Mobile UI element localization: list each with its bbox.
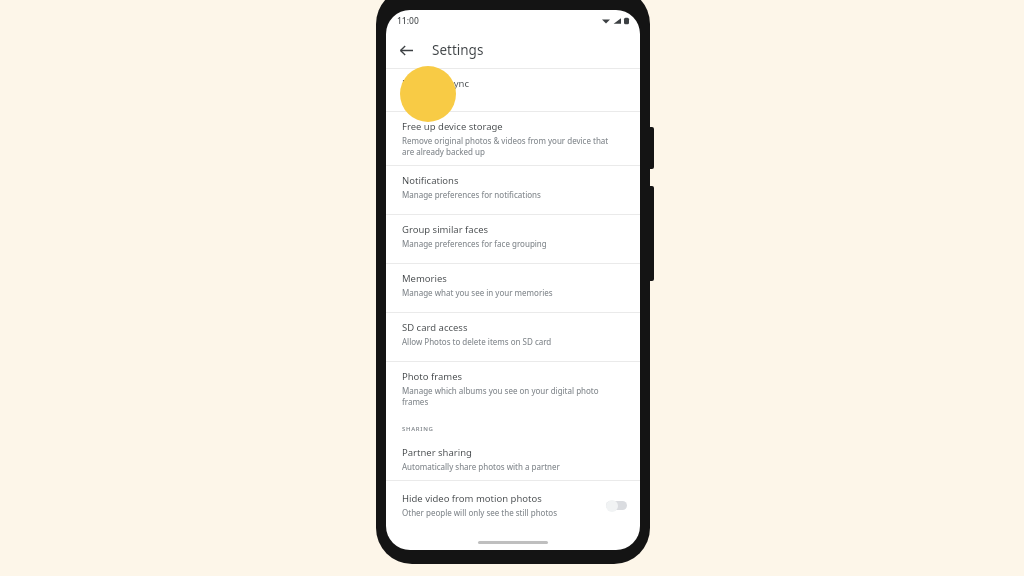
staticText: Manage preferences for face grouping <box>402 238 547 249</box>
button[interactable]: Back <box>392 36 420 64</box>
staticText: Group similar faces <box>402 223 489 236</box>
button[interactable]: Notifications <box>386 166 640 214</box>
staticText: 11:00 <box>397 15 419 27</box>
staticText: Partner sharing <box>402 446 472 459</box>
button[interactable]: Back up & sync <box>386 69 640 111</box>
button[interactable]: Partner sharing <box>386 438 640 480</box>
staticText: are already backed up <box>402 146 485 157</box>
button[interactable]: Hide video from motion photos <box>386 481 640 529</box>
staticText: Settings <box>432 41 484 59</box>
button[interactable]: Photo frames <box>386 362 640 414</box>
button[interactable]: Free up device storage <box>386 112 640 165</box>
staticText: SD card access <box>402 321 468 334</box>
button[interactable]: Hide video from motion photos toggle <box>606 499 627 512</box>
staticText: Manage preferences for notifications <box>402 189 541 200</box>
staticText: Manage what you see in your memories <box>402 287 553 298</box>
staticText: Notifications <box>402 174 459 187</box>
staticText: Remove original photos & videos from you… <box>402 135 609 146</box>
staticText: Automatically share photos with a partne… <box>402 461 560 472</box>
staticText: Back up & sync <box>402 77 470 90</box>
staticText: Free up device storage <box>402 120 503 133</box>
button[interactable]: SD card access <box>386 313 640 361</box>
staticText: SHARING <box>402 425 434 433</box>
staticText: frames <box>402 396 429 407</box>
staticText: Other people will only see the still pho… <box>402 507 558 518</box>
staticText: Manage which albums you see on your digi… <box>402 385 599 396</box>
staticText: Allow Photos to delete items on SD card <box>402 336 552 347</box>
staticText: Memories <box>402 272 447 285</box>
button[interactable]: Group similar faces <box>386 215 640 263</box>
button[interactable]: Memories <box>386 264 640 312</box>
staticText: Hide video from motion photos <box>402 492 542 505</box>
staticText: Photo frames <box>402 370 463 383</box>
